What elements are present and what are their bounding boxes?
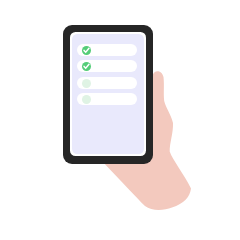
button[interactable]: Task complete: [77, 60, 137, 72]
button[interactable]: Checklist on phone: [63, 25, 153, 164]
button[interactable]: Task complete: [77, 44, 137, 56]
button[interactable]: Task pending: [77, 77, 137, 89]
button[interactable]: Task pending: [77, 93, 137, 105]
